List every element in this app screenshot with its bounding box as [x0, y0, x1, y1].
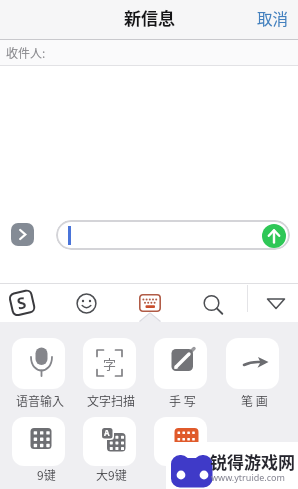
staticText: 收件人:: [6, 44, 46, 61]
staticText: www.ytruide.com: [211, 471, 285, 483]
button[interactable]: [83, 338, 136, 389]
button[interactable]: [75, 292, 98, 315]
button[interactable]: S: [5, 286, 38, 319]
button[interactable]: [154, 417, 207, 466]
staticText: 字: [103, 354, 117, 373]
button[interactable]: [226, 338, 279, 389]
button[interactable]: 收件人:: [0, 40, 298, 65]
button[interactable]: [12, 417, 65, 466]
button[interactable]: [265, 295, 287, 312]
staticText: S: [15, 291, 28, 315]
staticText: 笔 画: [241, 392, 268, 408]
staticText: A: [104, 427, 110, 438]
button[interactable]: [262, 224, 286, 248]
staticText: 新信息: [124, 5, 175, 30]
staticText: 锐得游戏网: [210, 449, 295, 474]
button[interactable]: [11, 223, 34, 246]
staticText: 大9键: [96, 466, 127, 482]
button[interactable]: 取消: [257, 7, 289, 29]
staticText: 语音输入: [16, 392, 65, 408]
staticText: 文字扫描: [87, 392, 136, 408]
button[interactable]: [83, 417, 136, 466]
staticText: 手 写: [169, 392, 196, 408]
button[interactable]: [154, 338, 207, 389]
staticText: 取消: [257, 7, 289, 29]
button[interactable]: [139, 294, 161, 312]
button[interactable]: [202, 293, 225, 316]
staticText: 9键: [37, 466, 56, 482]
button[interactable]: [12, 338, 65, 389]
